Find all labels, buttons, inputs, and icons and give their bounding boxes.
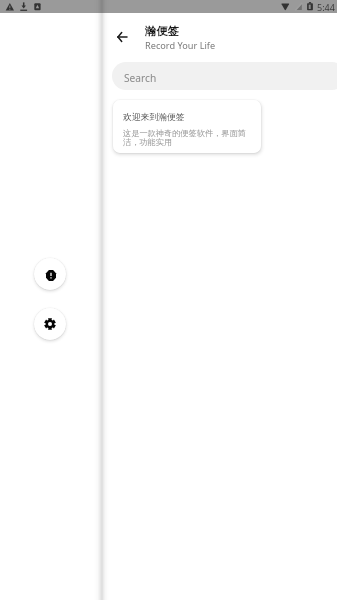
button[interactable]: Back [105, 20, 139, 54]
staticText: Record Your Life [145, 41, 216, 51]
staticText: 这是一款神奇的便签软件，界面简洁，功能实用 [123, 129, 247, 147]
staticText: 瀚便签 [145, 25, 179, 38]
button[interactable]: Settings [34, 308, 66, 340]
staticText: Search [124, 71, 157, 85]
staticText: 5:44 [317, 1, 335, 13]
button[interactable]: About [34, 258, 66, 290]
button[interactable]: Search [112, 62, 337, 90]
button[interactable]: 欢迎来到瀚便签 [113, 100, 261, 153]
staticText: 欢迎来到瀚便签 [123, 113, 185, 122]
